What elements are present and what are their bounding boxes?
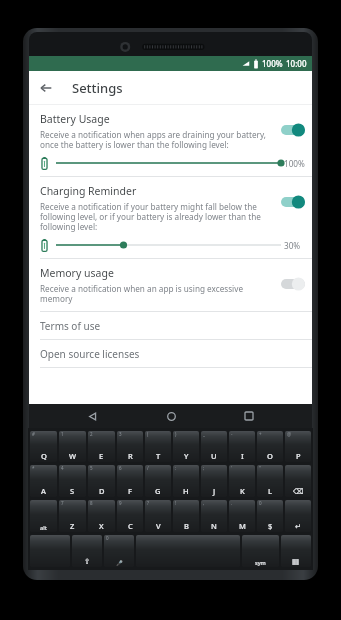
staticText: , bbox=[203, 500, 205, 506]
button[interactable]: space bbox=[30, 535, 70, 567]
button[interactable]: G bbox=[145, 465, 171, 497]
staticText: 1 bbox=[61, 431, 64, 437]
button[interactable]: Z bbox=[59, 500, 86, 532]
button[interactable]: W bbox=[59, 431, 86, 462]
staticText: T bbox=[156, 451, 161, 461]
button[interactable]: L bbox=[257, 465, 283, 497]
button[interactable]: Battery Usage bbox=[29, 105, 312, 176]
staticText: 30% bbox=[284, 240, 301, 251]
button[interactable]: F bbox=[117, 465, 143, 497]
button[interactable]: Recent apps bbox=[234, 404, 264, 428]
staticText: . bbox=[231, 500, 233, 506]
button[interactable]: T bbox=[145, 431, 171, 462]
button[interactable]: ▦ bbox=[281, 535, 311, 567]
button[interactable]: Toggle on bbox=[280, 194, 306, 210]
button[interactable]: Toggle on bbox=[280, 122, 306, 138]
staticText: X bbox=[99, 521, 104, 531]
button[interactable]: J bbox=[201, 465, 227, 497]
staticText: Settings bbox=[72, 79, 123, 97]
staticText: @ bbox=[287, 431, 292, 437]
staticText: S bbox=[70, 486, 75, 496]
button[interactable] bbox=[56, 157, 281, 169]
button[interactable]: S bbox=[59, 465, 86, 497]
button[interactable]: alt bbox=[30, 500, 57, 532]
button[interactable]: O bbox=[257, 431, 283, 462]
staticText: F bbox=[128, 486, 132, 496]
button[interactable]: Memory usage bbox=[29, 259, 312, 311]
staticText: ; bbox=[203, 465, 205, 471]
staticText: Charging Reminder bbox=[40, 184, 137, 198]
staticText: ( bbox=[147, 431, 149, 437]
button[interactable]: R bbox=[117, 431, 143, 462]
staticText: ↵ bbox=[295, 522, 302, 531]
staticText: 4 bbox=[61, 465, 64, 471]
button[interactable]: E bbox=[88, 431, 115, 462]
button[interactable]: U bbox=[201, 431, 227, 462]
staticText: I bbox=[241, 451, 244, 461]
staticText: 9 bbox=[119, 500, 122, 506]
button[interactable]: ↵ bbox=[285, 500, 311, 532]
staticText: C bbox=[128, 521, 133, 531]
staticText: Z bbox=[70, 521, 75, 531]
staticText: W bbox=[69, 451, 77, 461]
button[interactable]: H bbox=[173, 465, 199, 497]
staticText: ? bbox=[147, 500, 149, 506]
staticText: K bbox=[240, 486, 245, 496]
button[interactable] bbox=[56, 239, 281, 251]
staticText: # bbox=[32, 431, 35, 437]
staticText: V bbox=[156, 521, 161, 531]
button[interactable]: ⌫ bbox=[285, 465, 311, 497]
button[interactable]: M bbox=[229, 500, 255, 532]
staticText: 2 bbox=[90, 431, 93, 437]
staticText: _ bbox=[203, 431, 205, 437]
button[interactable]: ⇧ bbox=[72, 535, 102, 567]
button[interactable]: I bbox=[229, 431, 255, 462]
button[interactable]: Charging Reminder bbox=[29, 177, 312, 258]
staticText: Receive a notification when apps are dra… bbox=[40, 129, 274, 151]
staticText: 3 bbox=[119, 431, 122, 437]
staticText: Terms of use bbox=[40, 319, 101, 333]
button[interactable]: D bbox=[88, 465, 115, 497]
staticText: sym bbox=[255, 559, 266, 566]
staticText: Receive a notification if your battery m… bbox=[40, 201, 274, 233]
staticText: " bbox=[259, 465, 261, 471]
staticText: M bbox=[239, 521, 246, 531]
button[interactable]: Open source licenses bbox=[29, 340, 312, 367]
staticText: 6 bbox=[119, 465, 122, 471]
button[interactable]: Y bbox=[173, 431, 199, 462]
button[interactable]: X bbox=[88, 500, 115, 532]
button[interactable]: A bbox=[30, 465, 57, 497]
button[interactable]: sym bbox=[242, 535, 279, 567]
button[interactable]: N bbox=[201, 500, 227, 532]
button[interactable]: C bbox=[117, 500, 143, 532]
button[interactable]: $ bbox=[257, 500, 283, 532]
staticText: R bbox=[128, 451, 133, 461]
button[interactable]: Back bbox=[29, 71, 62, 104]
staticText: Receive a notification when an app is us… bbox=[40, 283, 274, 305]
button[interactable]: V bbox=[145, 500, 171, 532]
staticText: 7 bbox=[61, 500, 64, 506]
staticText: A bbox=[41, 486, 46, 496]
staticText: / bbox=[147, 465, 149, 471]
staticText: 100% bbox=[262, 58, 283, 69]
staticText: ! bbox=[175, 500, 177, 506]
staticText: Battery Usage bbox=[40, 112, 110, 126]
staticText: 8 bbox=[90, 500, 93, 506]
staticText: 5 bbox=[90, 465, 93, 471]
staticText: ⌫ bbox=[293, 487, 304, 496]
button[interactable]: 🎤 bbox=[104, 535, 134, 567]
button[interactable]: Toggle off bbox=[280, 276, 306, 292]
staticText: ) bbox=[175, 431, 177, 437]
staticText: $ bbox=[268, 521, 273, 531]
button[interactable]: Q bbox=[30, 431, 57, 462]
button[interactable]: Home bbox=[156, 404, 186, 428]
button[interactable]: B bbox=[173, 500, 199, 532]
staticText: Y bbox=[184, 451, 189, 461]
button[interactable]: Terms of use bbox=[29, 312, 312, 339]
staticText: N bbox=[211, 521, 217, 531]
button[interactable]: Back bbox=[77, 404, 107, 428]
button[interactable]: space bbox=[136, 535, 240, 567]
staticText: O bbox=[267, 451, 273, 461]
button[interactable]: P bbox=[285, 431, 311, 462]
button[interactable]: K bbox=[229, 465, 255, 497]
